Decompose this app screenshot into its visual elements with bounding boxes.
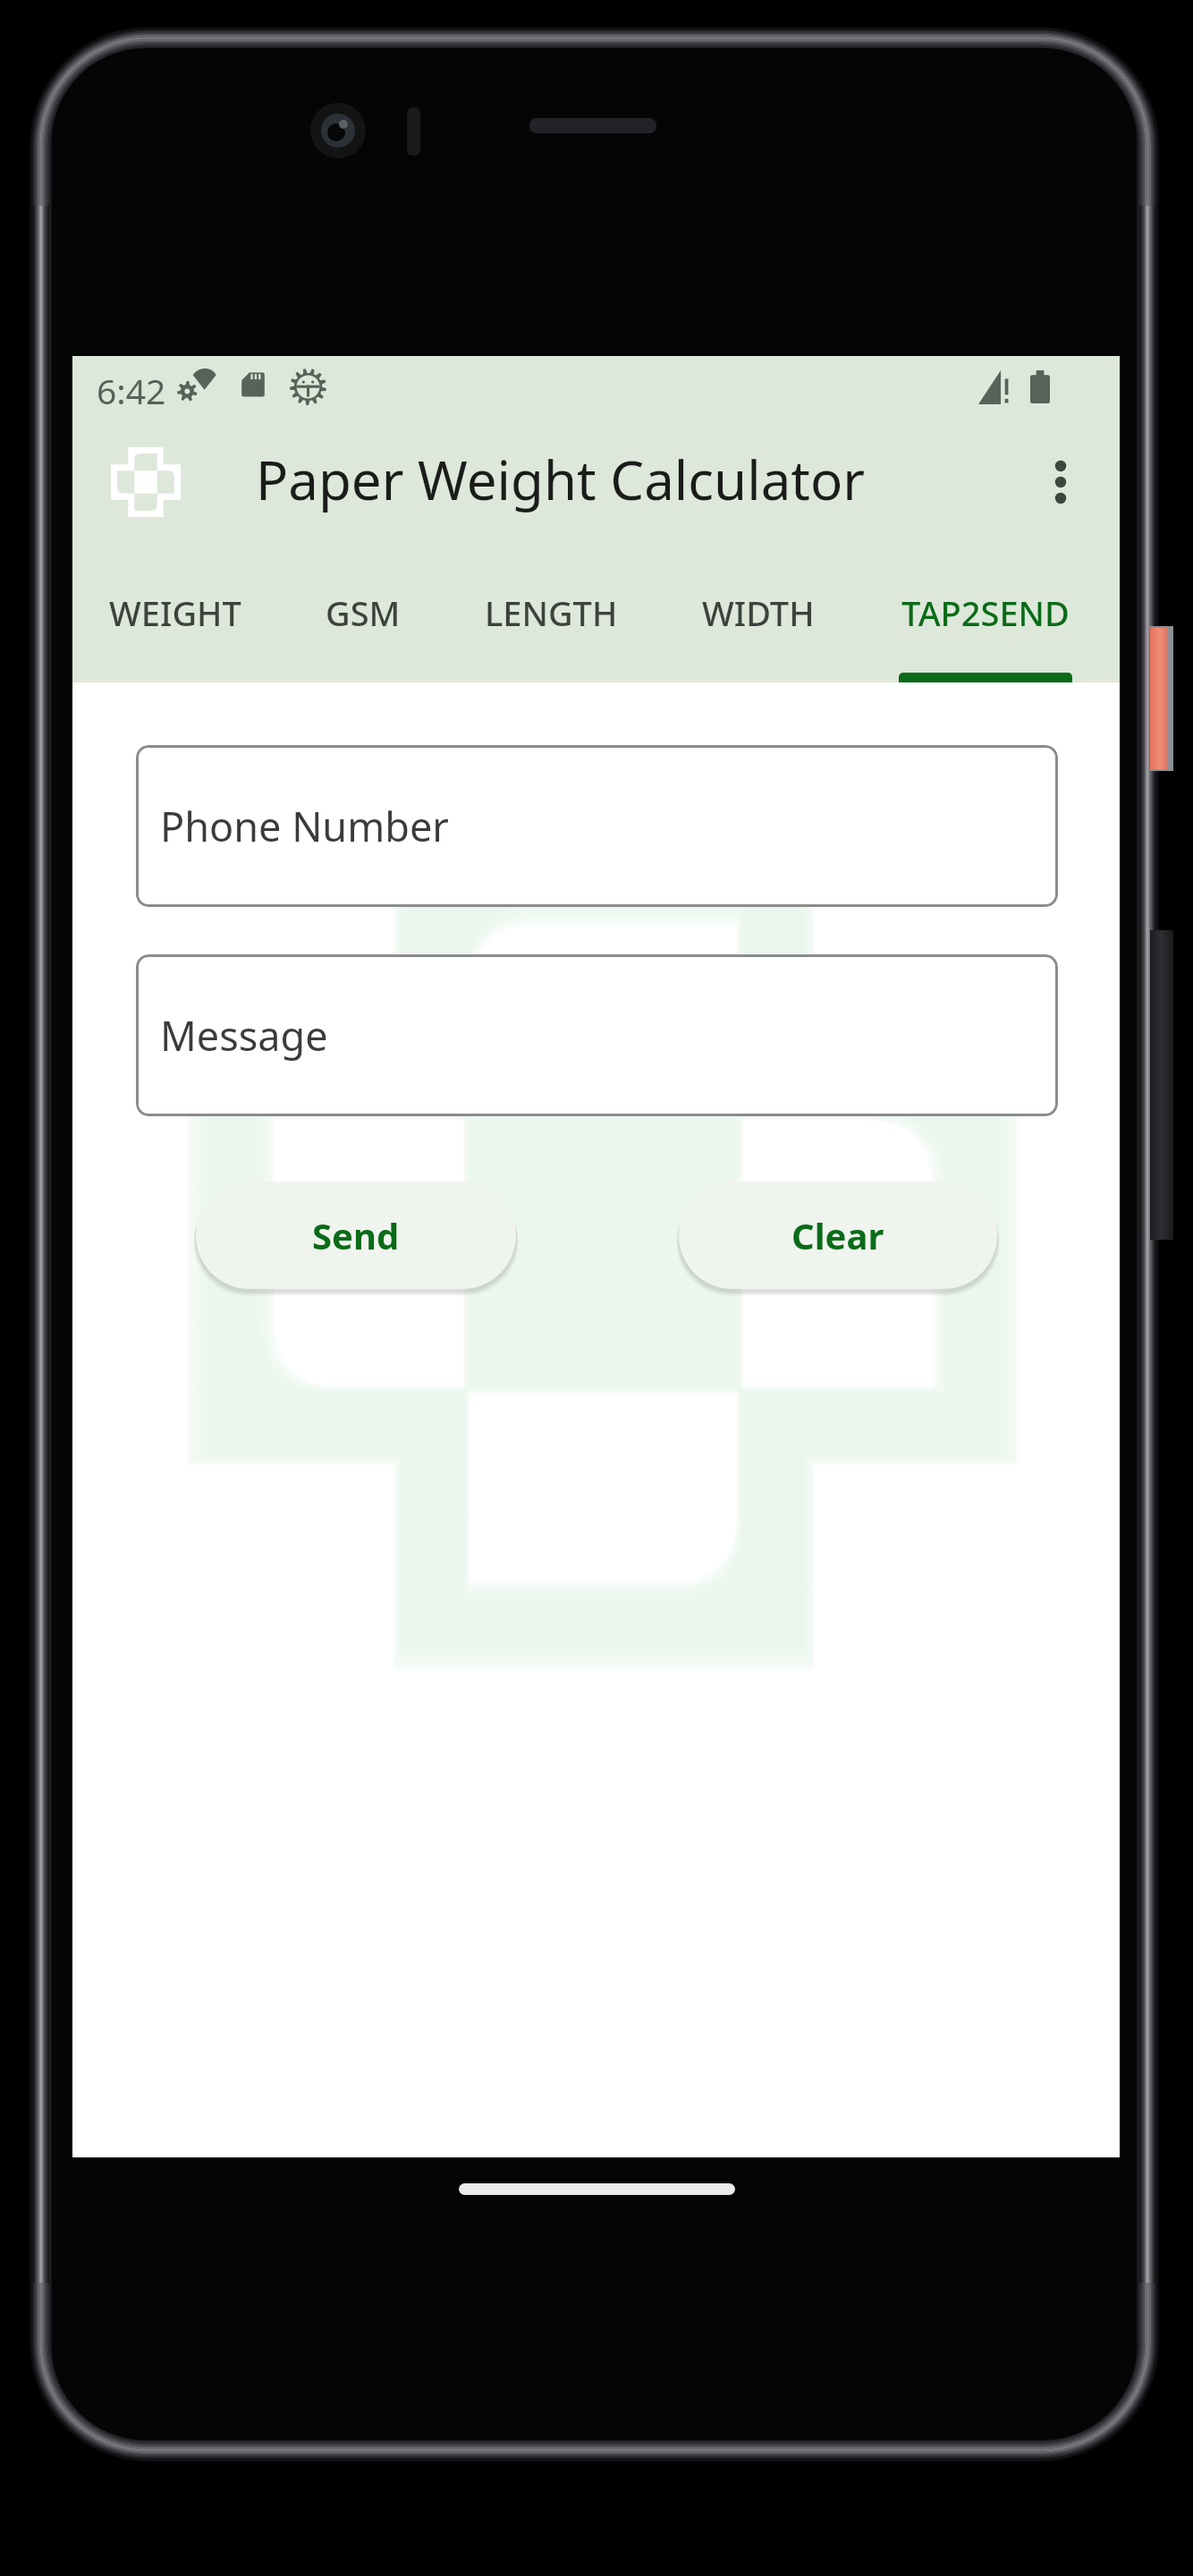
button[interactable]: App icon bbox=[101, 437, 190, 526]
button[interactable]: WEIGHT bbox=[67, 564, 283, 682]
button[interactable]: TAP2SEND bbox=[857, 564, 1114, 682]
staticText: LENGTH bbox=[485, 589, 618, 636]
staticText: TAP2SEND bbox=[901, 589, 1070, 636]
staticText: Clear bbox=[791, 1211, 884, 1259]
button[interactable]: LENGTH bbox=[443, 564, 660, 682]
button[interactable]: More options bbox=[1016, 437, 1105, 527]
button[interactable]: Clear bbox=[679, 1182, 997, 1289]
staticText: Phone Number bbox=[160, 799, 449, 853]
staticText: WEIGHT bbox=[109, 589, 241, 636]
staticText: GSM bbox=[326, 589, 401, 636]
staticText: 6:42 bbox=[97, 367, 166, 414]
button[interactable]: Send bbox=[196, 1182, 516, 1289]
staticText: Send bbox=[312, 1211, 400, 1259]
staticText: Paper Weight Calculator bbox=[256, 443, 866, 516]
button[interactable]: Message bbox=[136, 954, 1058, 1116]
button[interactable]: Home bbox=[459, 2183, 735, 2195]
button[interactable]: GSM bbox=[283, 564, 443, 682]
staticText: WIDTH bbox=[702, 589, 815, 636]
button[interactable]: Phone Number bbox=[136, 745, 1058, 907]
staticText: Message bbox=[160, 1008, 328, 1063]
button[interactable]: WIDTH bbox=[660, 564, 857, 682]
